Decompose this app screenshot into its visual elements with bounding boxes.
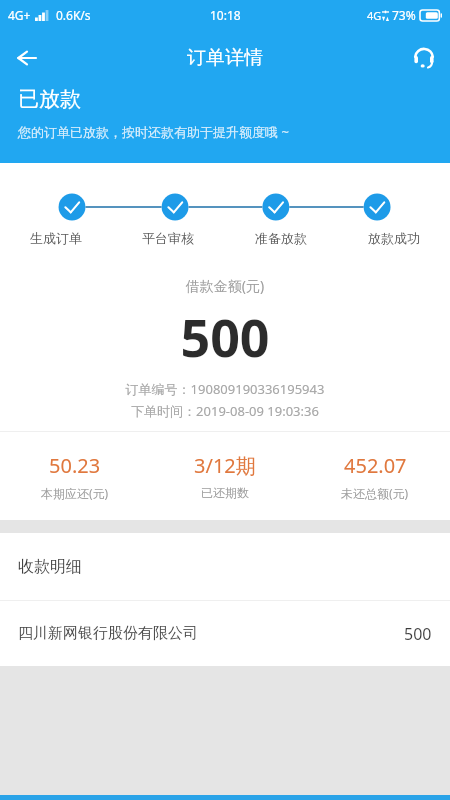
button[interactable]: 四川新网银行股份有限公司 xyxy=(0,601,450,666)
button[interactable]: 50.23 xyxy=(0,452,150,501)
staticText: 订单详情 xyxy=(187,46,263,70)
staticText: 生成订单 xyxy=(30,230,82,246)
staticText: 放款成功 xyxy=(368,230,420,246)
staticText: 500 xyxy=(404,623,432,645)
staticText: 四川新网银行股份有限公司 xyxy=(18,624,198,643)
staticText: 已放款 xyxy=(18,86,81,112)
button[interactable]: 3/12期 xyxy=(150,452,300,500)
staticText: 4G+ xyxy=(8,7,31,23)
staticText: 收款明细 xyxy=(18,557,82,577)
staticText: 本期应还(元) xyxy=(41,485,109,501)
staticText: 已还期数 xyxy=(201,485,249,500)
button[interactable]: 452.07 xyxy=(300,452,450,501)
staticText: 未还总额(元) xyxy=(341,485,409,501)
staticText: 借款金额(元) xyxy=(0,276,450,295)
staticText: 订单编号：190809190336195943 xyxy=(0,380,450,398)
staticText: 下单时间：2019-08-09 19:03:36 xyxy=(0,402,450,420)
staticText: 您的订单已放款，按时还款有助于提升额度哦 ~ xyxy=(18,123,289,141)
staticText: 452.07 xyxy=(344,452,407,479)
staticText: 10:18 xyxy=(210,7,241,23)
staticText: 3/12期 xyxy=(194,452,256,479)
staticText: 50.23 xyxy=(49,452,101,479)
button[interactable]: Customer service xyxy=(398,32,450,84)
button[interactable]: 收款明细 xyxy=(0,533,450,600)
button[interactable]: Back xyxy=(0,32,52,84)
staticText: 0.6K/s xyxy=(56,7,91,23)
staticText: 平台审核 xyxy=(142,230,194,246)
staticText: 500 xyxy=(0,301,450,372)
staticText: 73% xyxy=(392,7,416,23)
staticText: 4G xyxy=(367,8,382,23)
staticText: 准备放款 xyxy=(255,230,307,246)
